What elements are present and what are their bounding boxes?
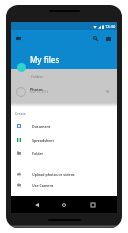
button[interactable]: Search <box>89 32 102 45</box>
staticText: Upload photos or videos <box>32 172 75 177</box>
button[interactable]: Upload photos or videos <box>11 168 117 180</box>
button[interactable]: Account <box>17 63 26 72</box>
staticText: My files <box>30 54 60 65</box>
staticText: Create <box>15 111 26 116</box>
button[interactable]: Back <box>30 198 44 212</box>
button[interactable]: Use Camera <box>11 179 117 191</box>
staticText: 12:30 <box>105 24 116 29</box>
button[interactable]: Document <box>11 120 117 132</box>
staticText: Use Camera <box>32 183 54 188</box>
button[interactable]: Open navigation drawer <box>11 31 25 45</box>
staticText: Folders <box>31 74 43 79</box>
button[interactable] <box>11 82 117 101</box>
staticText: Folder <box>32 151 44 156</box>
button[interactable]: Switch view <box>102 32 115 45</box>
button[interactable]: Folder <box>11 147 117 159</box>
staticText: Mar 19, 2014 <box>30 90 49 94</box>
staticText: Spreadsheet <box>32 138 54 143</box>
button[interactable]: Home <box>57 198 71 212</box>
button[interactable]: Spreadsheet <box>11 134 117 146</box>
button[interactable]: Recent apps <box>86 198 100 212</box>
staticText: Photos <box>30 87 43 92</box>
staticText: Document <box>32 124 51 129</box>
